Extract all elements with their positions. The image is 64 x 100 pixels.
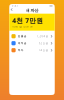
staticText: 32만원 bbox=[38, 41, 48, 45]
staticText: 입출금 bbox=[18, 35, 27, 38]
staticText: 4천 7만원 bbox=[12, 16, 43, 25]
staticText: 9:41 bbox=[12, 4, 19, 7]
staticText: 이번 달 모은 돈 bbox=[12, 25, 33, 28]
button[interactable]: Back bbox=[11, 8, 16, 13]
staticText: 예적금 bbox=[18, 42, 27, 45]
button[interactable]: 투자 bbox=[9, 47, 55, 54]
staticText: ▮▮▮ bbox=[49, 4, 52, 7]
staticText: 1,204원 bbox=[36, 34, 48, 38]
staticText: 내 자산 bbox=[25, 8, 38, 13]
button[interactable]: 예적금 bbox=[9, 40, 55, 47]
button[interactable]: 입출금 bbox=[9, 33, 55, 40]
staticText: 14만원 bbox=[38, 48, 48, 52]
staticText: 투자 bbox=[18, 49, 24, 52]
